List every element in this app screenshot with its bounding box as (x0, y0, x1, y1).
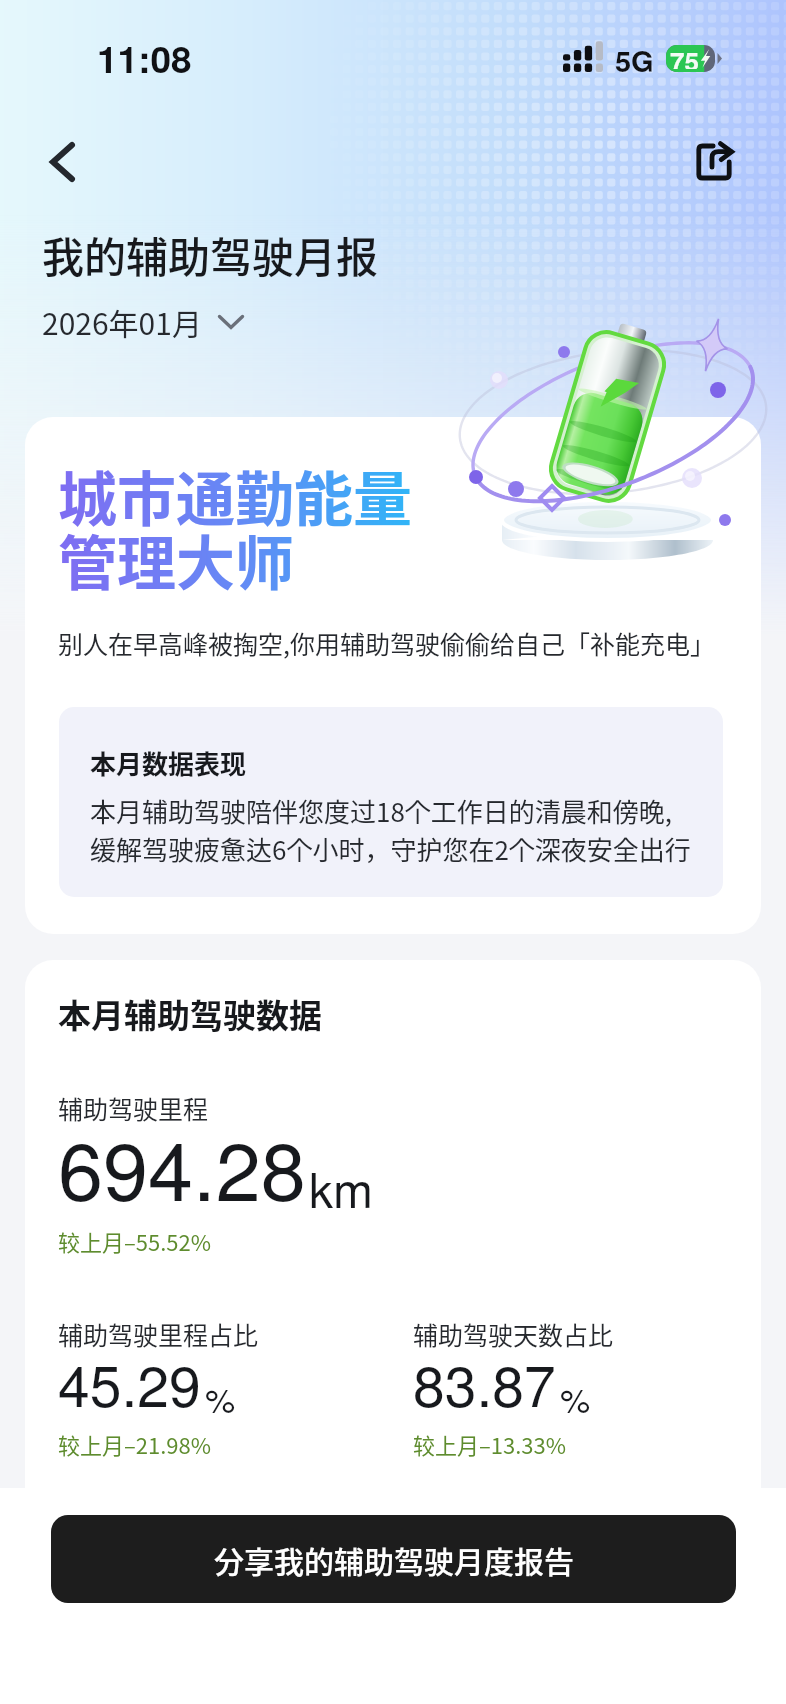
staticText: 较上月–21.98% (58, 1428, 212, 1460)
button[interactable]: 分享我的辅助驾驶月度报告 (51, 1515, 736, 1603)
button[interactable]: Back (33, 132, 93, 192)
staticText: 管理大师 (58, 517, 295, 602)
staticText: 5G (615, 39, 654, 81)
staticText: 辅助驾驶天数占比 (413, 1316, 614, 1352)
staticText: 分享我的辅助驾驶月度报告 (214, 1538, 574, 1581)
button[interactable]: Share (684, 132, 744, 192)
staticText: % (205, 1374, 236, 1423)
staticText: 较上月–13.33% (413, 1428, 567, 1460)
staticText: 较上月–55.52% (58, 1225, 212, 1257)
staticText: 辅助驾驶里程 (58, 1090, 209, 1126)
staticText: 本月辅助驾驶数据 (58, 990, 322, 1038)
staticText: 2026年01月 (42, 300, 202, 343)
staticText: 45.29 (58, 1342, 201, 1424)
staticText: 本月辅助驾驶陪伴您度过18个工作日的清晨和傍晚, 缓解驾驶疲惫达6个小时，守护您… (90, 792, 691, 868)
staticText: 75 (670, 42, 699, 69)
staticText: 城市通勤能量 (58, 453, 413, 538)
staticText: 83.87 (413, 1342, 556, 1424)
staticText: 694.28 (58, 1108, 306, 1224)
staticText: 辅助驾驶里程占比 (58, 1316, 259, 1352)
staticText: 本月数据表现 (90, 744, 247, 782)
staticText: 别人在早高峰被掏空,你用辅助驾驶偷偷给自己「补能充电」 (58, 625, 715, 661)
staticText: 11:08 (97, 31, 192, 84)
staticText: 我的辅助驾驶月报 (42, 224, 379, 285)
staticText: km (309, 1153, 373, 1222)
staticText: % (560, 1374, 591, 1423)
button[interactable]: 2026年01月 (42, 300, 244, 343)
